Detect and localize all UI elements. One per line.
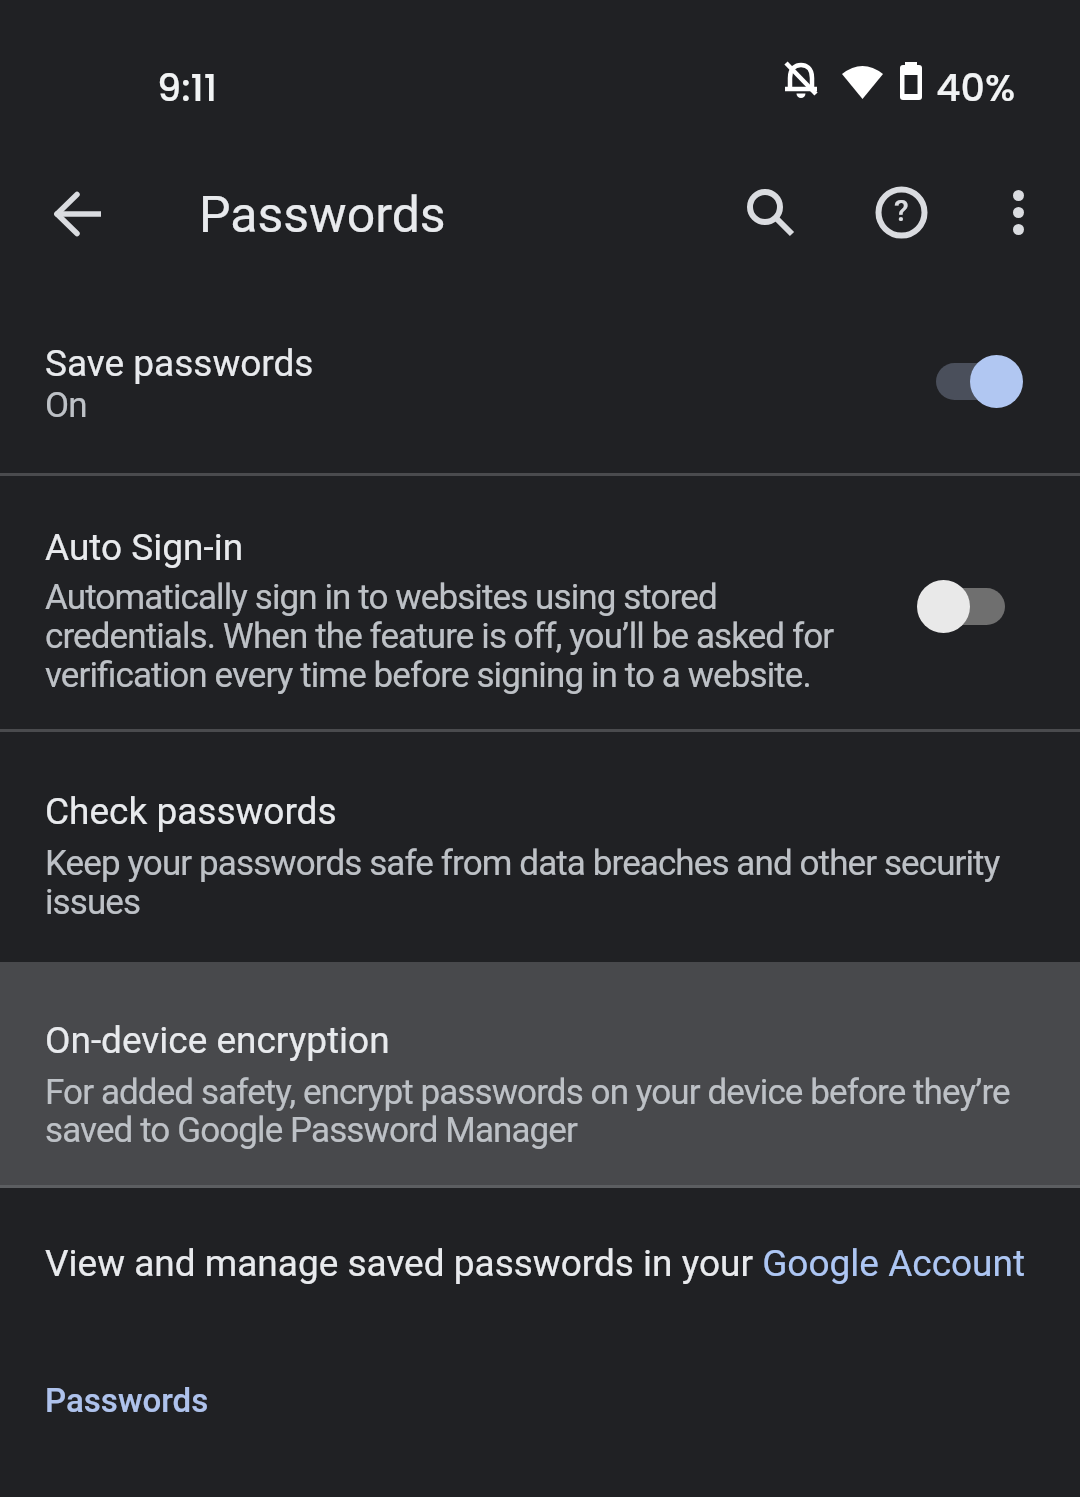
button[interactable]	[0, 1188, 1080, 1333]
button[interactable]: ?	[853, 164, 949, 260]
button[interactable]	[30, 165, 128, 263]
staticText: Passwords	[45, 1381, 209, 1420]
staticText: View and manage saved passwords in your …	[45, 1242, 1026, 1285]
button[interactable]	[0, 476, 1080, 729]
button[interactable]	[0, 732, 1080, 962]
button[interactable]	[0, 962, 1080, 1188]
button[interactable]	[917, 354, 1023, 408]
staticText: 40%	[936, 61, 1016, 114]
button[interactable]	[917, 579, 1023, 633]
staticText: Automatically sign in to websites using …	[45, 577, 717, 618]
staticText: issues	[45, 882, 141, 923]
staticText: On-device encryption	[45, 1019, 390, 1062]
staticText: Check passwords	[45, 790, 337, 833]
button[interactable]	[0, 292, 1080, 473]
staticText: For added safety, encrypt passwords on y…	[45, 1072, 1010, 1113]
staticText: Keep your passwords safe from data breac…	[45, 843, 1000, 884]
staticText: credentials. When the feature is off, yo…	[45, 616, 834, 657]
staticText: saved to Google Password Manager	[45, 1110, 577, 1151]
staticText: On	[45, 385, 87, 426]
staticText: ?	[894, 193, 909, 228]
button[interactable]	[723, 164, 819, 260]
staticText: 9:11	[157, 61, 218, 114]
staticText: Auto Sign-in	[45, 526, 244, 569]
staticText: verification every time before signing i…	[45, 655, 811, 696]
staticText: Save passwords	[45, 342, 314, 385]
staticText: Passwords	[199, 186, 446, 245]
button[interactable]	[970, 164, 1066, 260]
